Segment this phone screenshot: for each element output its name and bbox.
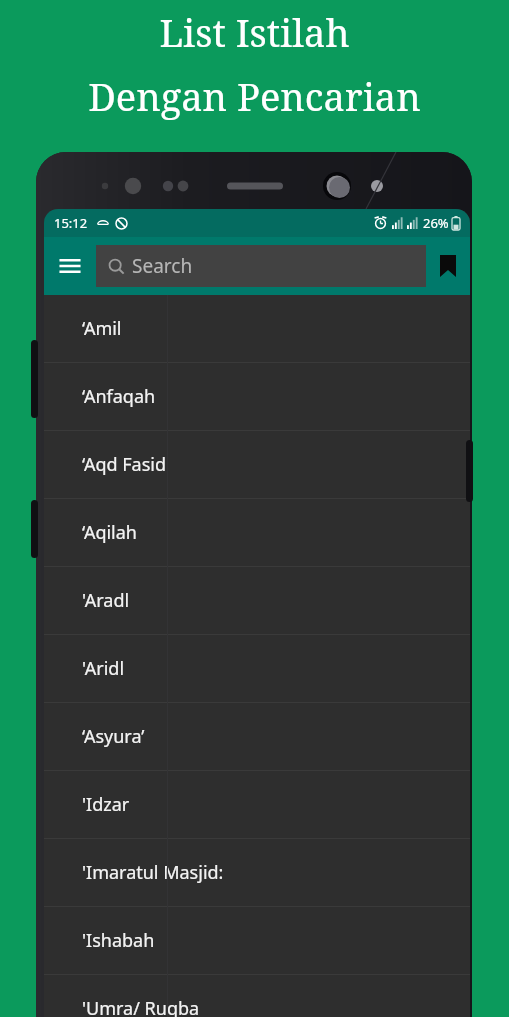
button[interactable]: Search <box>96 245 426 287</box>
button[interactable]: Open navigation menu <box>44 240 96 292</box>
staticText: ‘Anfaqah <box>82 384 156 409</box>
button[interactable]: ‘Amil <box>44 295 470 362</box>
button[interactable]: 'Idzar <box>44 771 470 838</box>
button[interactable]: ‘Aqd Fasid <box>44 431 470 498</box>
staticText: Search <box>132 253 193 279</box>
staticText: 15:12 <box>54 214 88 232</box>
button[interactable]: 'Imaratul Masjid: <box>44 839 470 906</box>
staticText: 'Umra/ Ruqba <box>82 996 200 1017</box>
staticText: 'Ishabah <box>82 928 155 953</box>
button[interactable]: 'Ishabah <box>44 907 470 974</box>
staticText: ‘Aqd Fasid <box>82 452 166 477</box>
staticText: 'Aradl <box>82 588 130 613</box>
staticText: 'Aridl <box>82 656 125 681</box>
button[interactable]: 'Aradl <box>44 567 470 634</box>
staticText: Dengan Pencarian <box>88 70 421 122</box>
button[interactable]: ‘Asyura’ <box>44 703 470 770</box>
button[interactable]: 'Umra/ Ruqba <box>44 975 470 1017</box>
staticText: 26% <box>423 214 449 232</box>
staticText: List Istilah <box>159 6 350 58</box>
button[interactable]: ‘Anfaqah <box>44 363 470 430</box>
staticText: ‘Asyura’ <box>82 724 145 749</box>
button[interactable]: 'Aridl <box>44 635 470 702</box>
staticText: ‘Amil <box>82 316 122 341</box>
button[interactable]: Bookmarks <box>426 244 470 288</box>
staticText: 'Imaratul Masjid: <box>82 860 224 885</box>
staticText: ‘Aqilah <box>82 520 137 545</box>
button[interactable]: ‘Aqilah <box>44 499 470 566</box>
staticText: 'Idzar <box>82 792 130 817</box>
